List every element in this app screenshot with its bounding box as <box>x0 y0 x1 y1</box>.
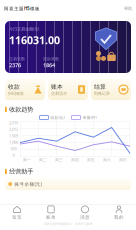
staticText: 结算 <box>94 83 106 90</box>
staticText: 消息 <box>80 214 90 220</box>
button[interactable]: 消息 <box>68 204 102 221</box>
staticText: 周四 <box>71 158 79 162</box>
staticText: 单量(件) <box>82 115 96 120</box>
staticText: 账号余额(元) <box>14 181 41 187</box>
staticText: 周五 <box>87 158 95 162</box>
staticText: 帮助 <box>124 6 132 11</box>
staticText: 阿喜主题H5模板演示 · 仅供学习参考 <box>43 221 92 226</box>
staticText: 2,012 <box>9 126 18 132</box>
button[interactable]: 账单 <box>34 204 68 221</box>
staticText: 扫码收款 <box>8 91 24 96</box>
staticText: 首页 <box>12 214 22 220</box>
staticText: 周二 <box>39 158 47 162</box>
staticText: 收款趋势 <box>9 106 33 113</box>
staticText: 0 <box>12 153 14 158</box>
staticText: 2,515 <box>9 120 18 125</box>
button[interactable]: 账号余额(元) <box>5 178 131 190</box>
staticText: 今日交易金额(元) <box>9 26 39 32</box>
staticText: 1,509 <box>9 133 18 138</box>
staticText: 阿喜主题H5模板 <box>4 5 40 12</box>
staticText: 我的 <box>114 214 124 220</box>
staticText: 周六 <box>103 158 111 162</box>
staticText: 周日 <box>119 158 127 162</box>
staticText: 503 <box>10 146 16 151</box>
staticText: 周一 <box>23 158 31 162</box>
staticText: 收款 <box>8 83 20 90</box>
button[interactable]: 结算 <box>91 79 131 100</box>
button[interactable]: 账本 <box>48 79 88 100</box>
button[interactable]: 我的 <box>102 204 136 221</box>
button[interactable]: 收款 <box>5 79 45 100</box>
staticText: 账本 <box>51 83 63 90</box>
staticText: 到账记录 <box>94 91 110 96</box>
staticText: 周三 <box>55 158 63 162</box>
staticText: 账单 <box>46 214 56 220</box>
staticText: 交易流水 <box>51 91 67 96</box>
staticText: 1,006 <box>9 139 18 145</box>
staticText: 1864 <box>43 61 55 69</box>
staticText: 交易笔数 <box>9 56 25 61</box>
button[interactable]: 首页 <box>0 204 34 221</box>
button[interactable]: 帮助 <box>124 6 132 11</box>
staticText: 2376 <box>9 61 21 69</box>
staticText: 退款笔数 <box>43 56 59 61</box>
staticText: 收款(元) <box>50 115 64 120</box>
staticText: 经营助手 <box>9 168 33 175</box>
staticText: 116031.00 <box>9 33 60 47</box>
